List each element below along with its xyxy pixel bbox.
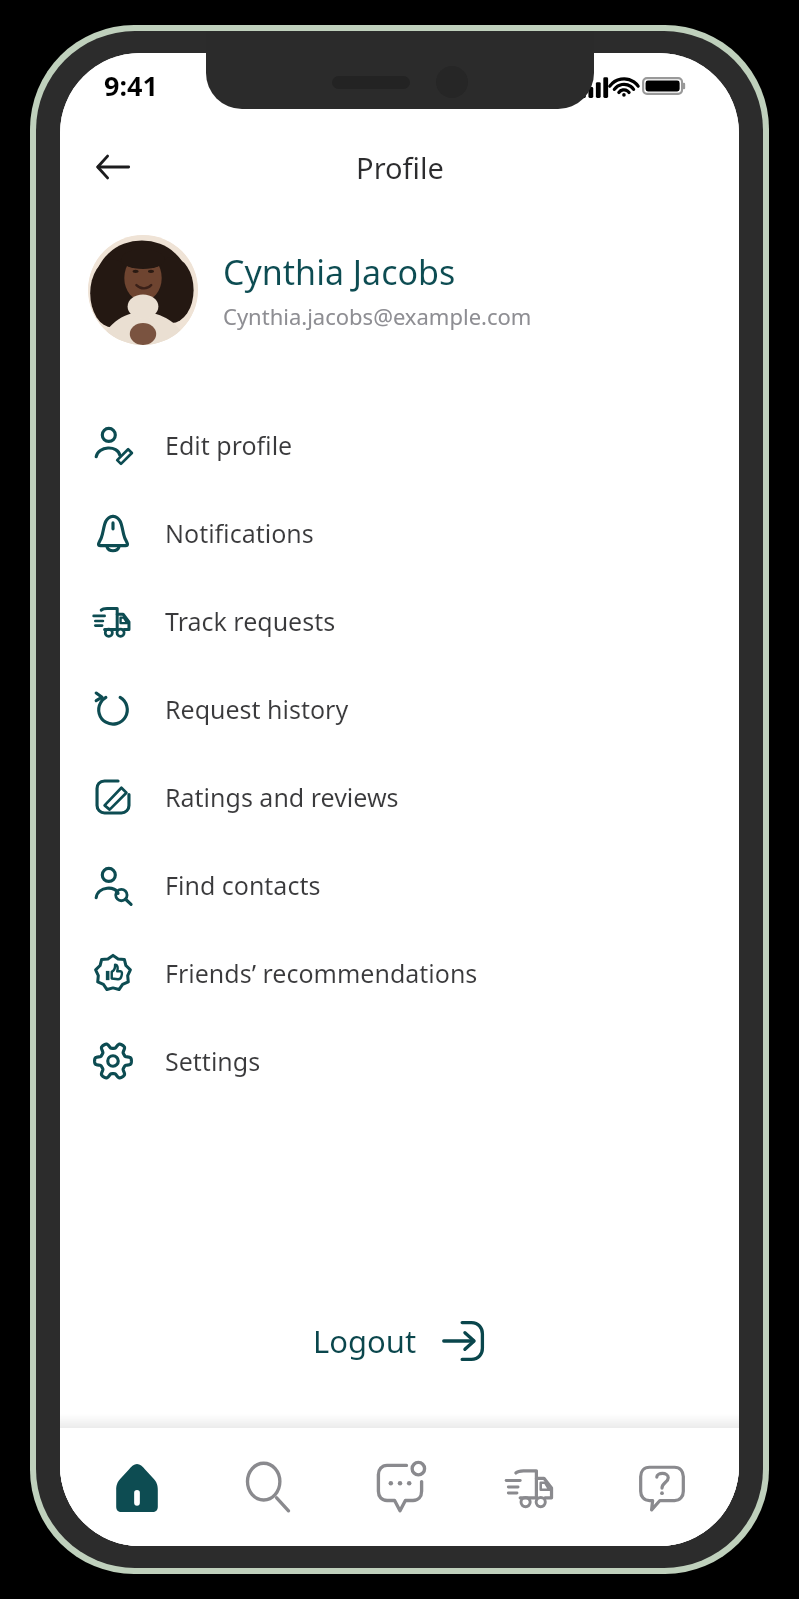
staticText: Track requests — [165, 604, 336, 638]
staticText: Request history — [165, 692, 349, 726]
staticText: Profile — [356, 148, 444, 187]
button[interactable]: Request history — [60, 665, 739, 753]
button[interactable]: Logout — [295, 1308, 505, 1374]
button[interactable]: Home — [83, 1435, 191, 1539]
button[interactable]: Cynthia Jacobs — [60, 213, 739, 365]
staticText: Settings — [165, 1044, 261, 1078]
button[interactable]: Edit profile — [60, 401, 739, 489]
button[interactable]: Notifications — [60, 489, 739, 577]
staticText: Cynthia.jacobs@example.com — [223, 301, 532, 331]
button[interactable]: Deliveries — [477, 1435, 585, 1539]
button[interactable]: Track requests — [60, 577, 739, 665]
button[interactable]: Back — [82, 136, 144, 198]
button[interactable]: Friends’ recommendations — [60, 929, 739, 1017]
button[interactable]: Messages — [346, 1435, 454, 1539]
staticText: Notifications — [165, 516, 314, 550]
staticText: 9:41 — [104, 67, 158, 104]
staticText: Edit profile — [165, 428, 293, 462]
button[interactable]: Ratings and reviews — [60, 753, 739, 841]
button[interactable]: Settings — [60, 1017, 739, 1105]
staticText: Find contacts — [165, 868, 321, 902]
button[interactable]: Find contacts — [60, 841, 739, 929]
button[interactable]: Help — [608, 1435, 716, 1539]
staticText: Ratings and reviews — [165, 780, 399, 814]
staticText: Cynthia Jacobs — [223, 249, 456, 295]
button[interactable]: Search — [214, 1435, 322, 1539]
staticText: Friends’ recommendations — [165, 956, 478, 990]
staticText: Logout — [313, 1320, 417, 1362]
